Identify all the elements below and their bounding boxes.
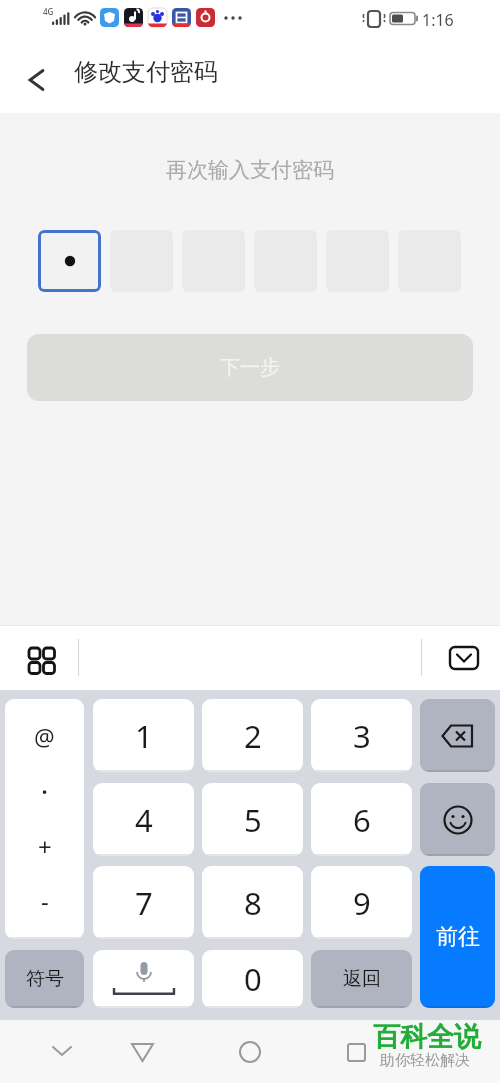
button[interactable]: 2 <box>202 699 303 772</box>
staticText: 0 <box>244 958 262 1000</box>
staticText: · <box>41 773 49 808</box>
button[interactable]: 6 <box>311 783 412 856</box>
button[interactable]: 3 <box>311 699 412 772</box>
button[interactable]: 前往 <box>420 866 495 1008</box>
button[interactable] <box>40 1030 84 1074</box>
button[interactable] <box>120 1030 164 1074</box>
staticText: 再次输入支付密码 <box>166 157 334 183</box>
staticText: 3 <box>353 715 371 757</box>
staticText: 百科全说 <box>373 1020 481 1054</box>
staticText: @ <box>34 721 55 752</box>
button[interactable] <box>442 639 486 679</box>
staticText: 5 <box>244 799 262 841</box>
staticText: 1:16 <box>422 9 454 31</box>
button[interactable]: 8 <box>202 866 303 939</box>
staticText: 2 <box>244 715 262 757</box>
button[interactable] <box>334 1030 378 1074</box>
button[interactable]: 返回 <box>311 950 412 1008</box>
staticText: 4G <box>43 6 54 17</box>
button[interactable] <box>14 58 58 102</box>
staticText: 前往 <box>436 923 480 951</box>
button[interactable]: 9 <box>311 866 412 939</box>
staticText: - <box>41 884 49 917</box>
staticText: 4 <box>135 799 153 841</box>
button[interactable]: 4 <box>93 783 194 856</box>
staticText: 符号 <box>26 967 64 991</box>
button[interactable]: 5 <box>202 783 303 856</box>
staticText: 7 <box>135 882 153 924</box>
staticText: 9 <box>353 882 371 924</box>
button[interactable]: 符号 <box>5 950 84 1008</box>
button[interactable]: @ <box>5 699 84 939</box>
button[interactable] <box>420 783 495 856</box>
staticText: 1 <box>135 715 153 757</box>
staticText: + <box>38 830 52 863</box>
button[interactable] <box>420 699 495 772</box>
staticText: 8 <box>244 882 262 924</box>
staticText: 修改支付密码 <box>74 57 218 87</box>
staticText: 下一步 <box>220 355 280 380</box>
button[interactable]: 1 <box>93 699 194 772</box>
staticText: 助你轻松解决 <box>380 1051 470 1070</box>
button[interactable]: 7 <box>93 866 194 939</box>
staticText: 返回 <box>343 967 381 991</box>
button[interactable]: 0 <box>202 950 303 1008</box>
button[interactable] <box>20 639 64 679</box>
button[interactable] <box>93 950 194 1008</box>
staticText: 6 <box>353 799 371 841</box>
button[interactable] <box>228 1030 272 1074</box>
